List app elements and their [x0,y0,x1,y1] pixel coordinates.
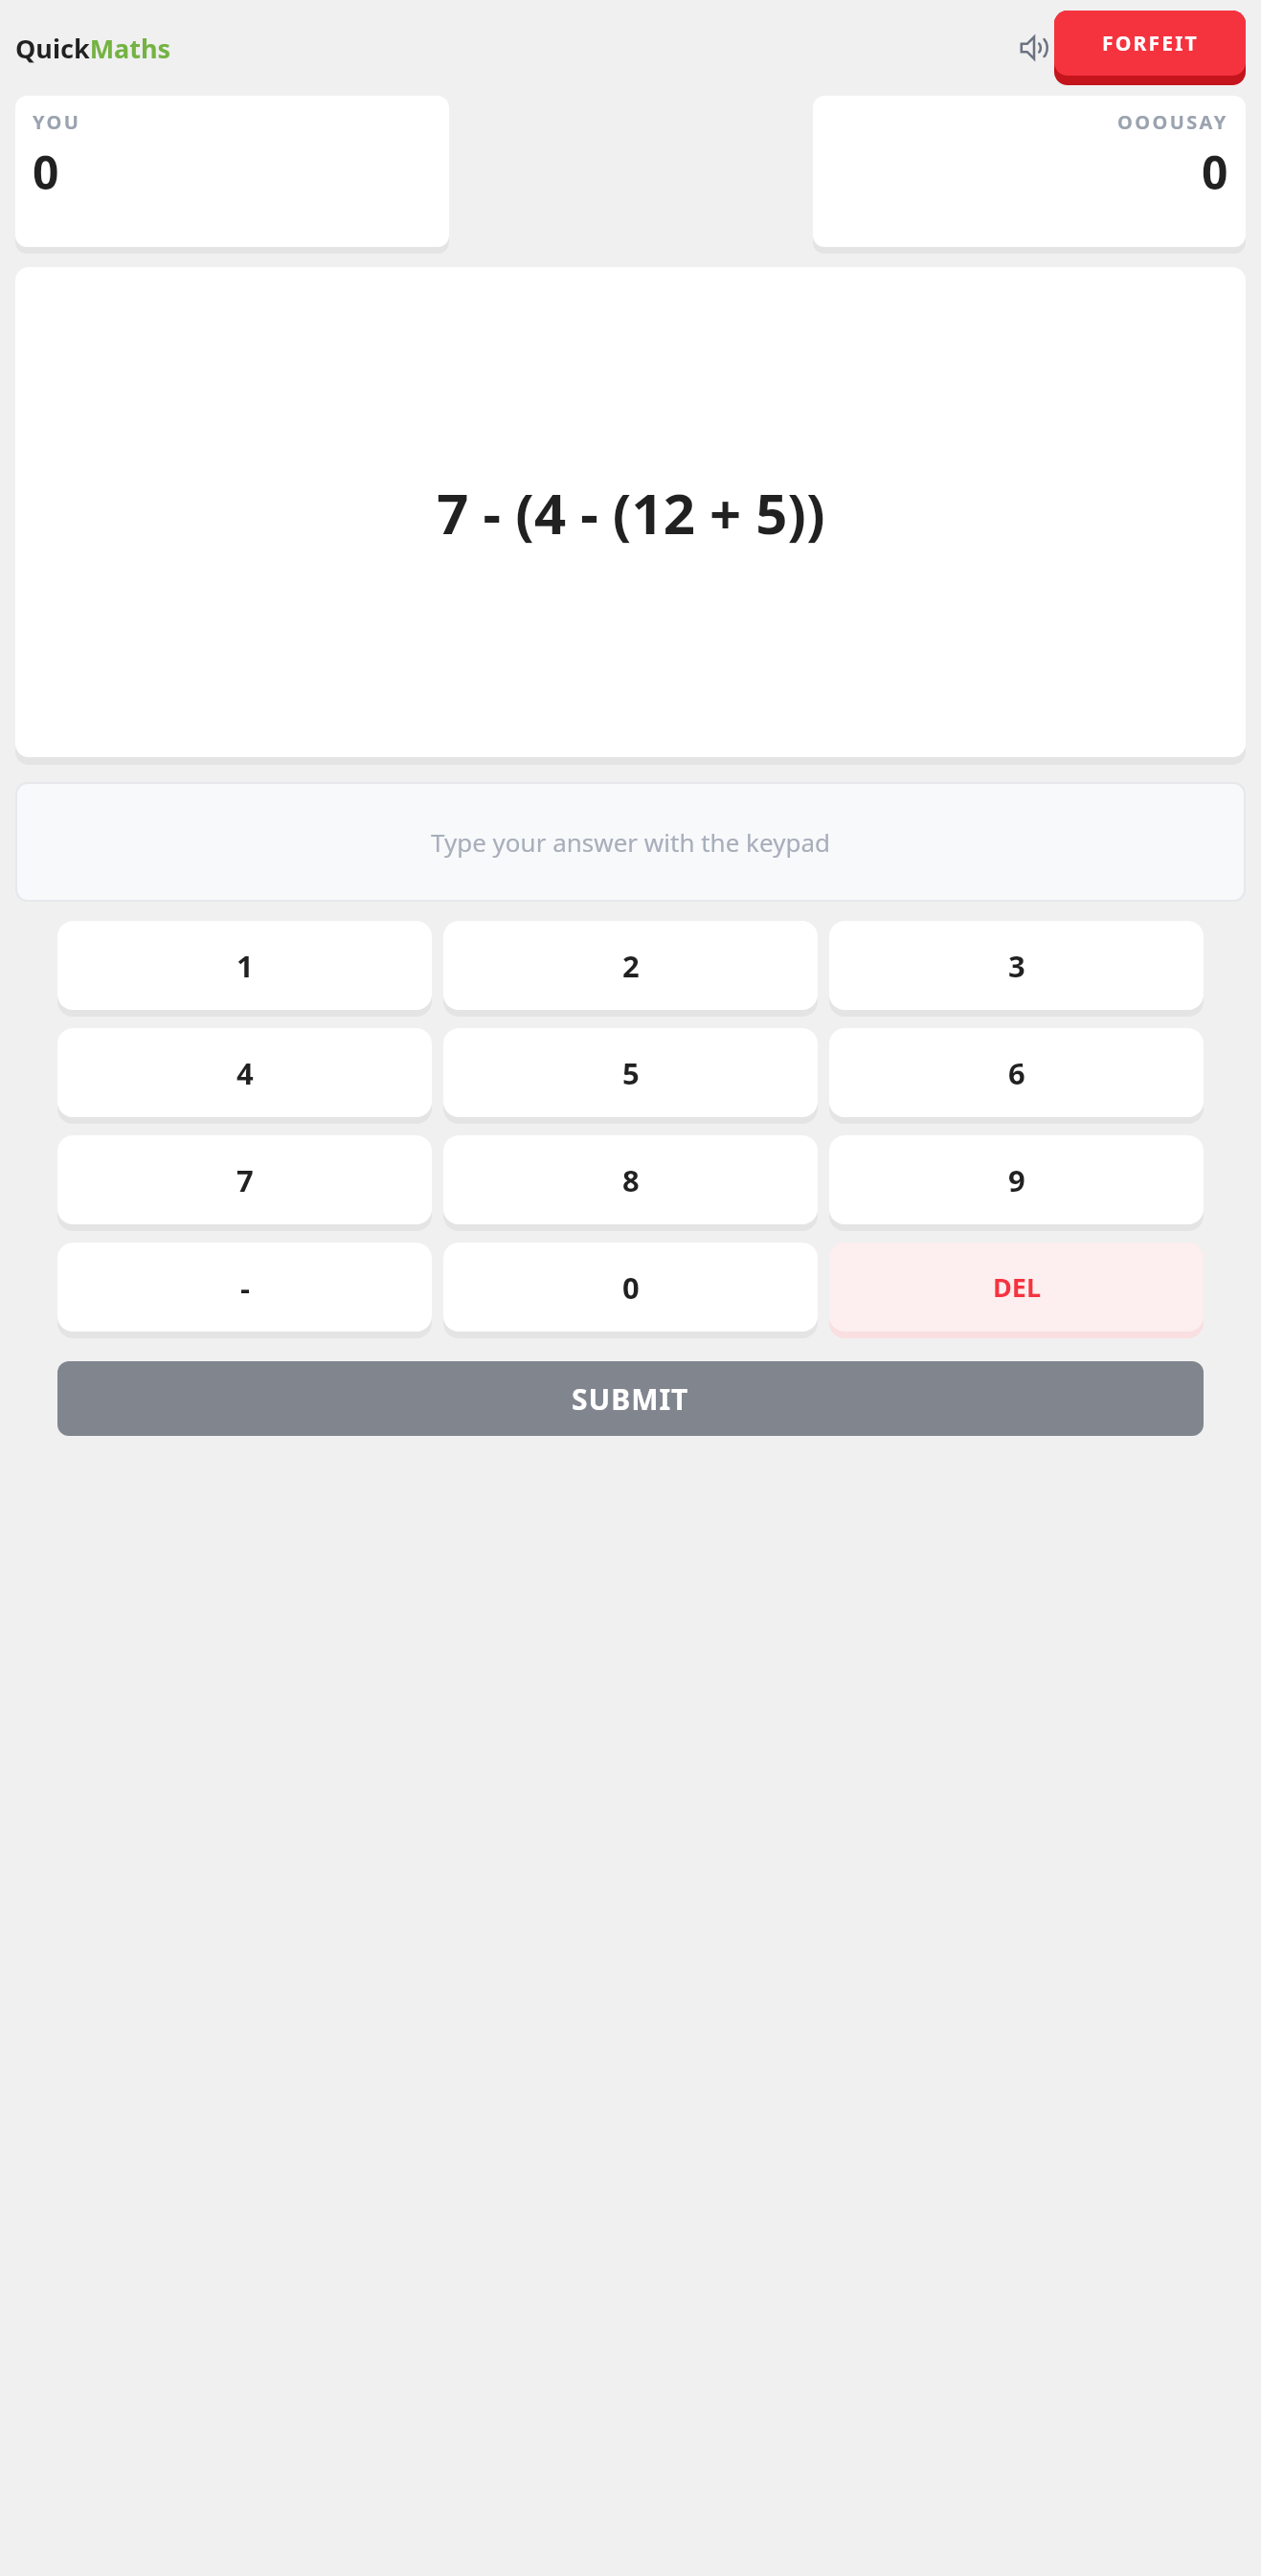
button[interactable]: 5 [443,1028,818,1124]
button[interactable]: 1 [57,921,432,1017]
button[interactable]: - [57,1243,432,1338]
staticText: 9 [1008,1160,1025,1200]
staticText: 1 [236,946,254,986]
staticText: QuickMaths [15,31,171,66]
staticText: 0 [1202,141,1228,203]
staticText: 2 [622,946,640,986]
button[interactable]: 0 [443,1243,818,1338]
staticText: 7 - (4 - (12 + 5)) [437,475,825,550]
button[interactable]: SUBMIT [57,1361,1204,1436]
button[interactable]: DEL [829,1243,1204,1338]
staticText: 5 [622,1053,640,1093]
button[interactable]: 6 [829,1028,1204,1124]
staticText: OOOUSAY [1117,109,1228,135]
button[interactable]: Type your answer with the keypad [15,782,1246,902]
staticText: 6 [1008,1053,1025,1093]
button[interactable]: 3 [829,921,1204,1017]
button[interactable]: 8 [443,1135,818,1231]
staticText: FORFEIT [1102,30,1199,57]
button[interactable]: 4 [57,1028,432,1124]
button[interactable]: 9 [829,1135,1204,1231]
staticText: 7 [236,1160,254,1200]
staticText: YOU [33,109,81,135]
staticText: 4 [236,1053,254,1093]
staticText: SUBMIT [572,1379,689,1419]
staticText: 0 [33,141,59,203]
staticText: - [240,1267,250,1308]
button[interactable]: 2 [443,921,818,1017]
button[interactable]: OOOUSAY [813,96,1246,247]
button[interactable]: Toggle sound [1012,26,1056,70]
staticText: 8 [622,1160,640,1200]
staticText: 3 [1008,946,1025,986]
staticText: DEL [993,1269,1041,1305]
button[interactable]: FORFEIT [1054,11,1246,85]
staticText: 0 [622,1267,640,1308]
staticText: Type your answer with the keypad [431,825,830,859]
button[interactable]: YOU [15,96,449,247]
button[interactable]: 7 [57,1135,432,1231]
